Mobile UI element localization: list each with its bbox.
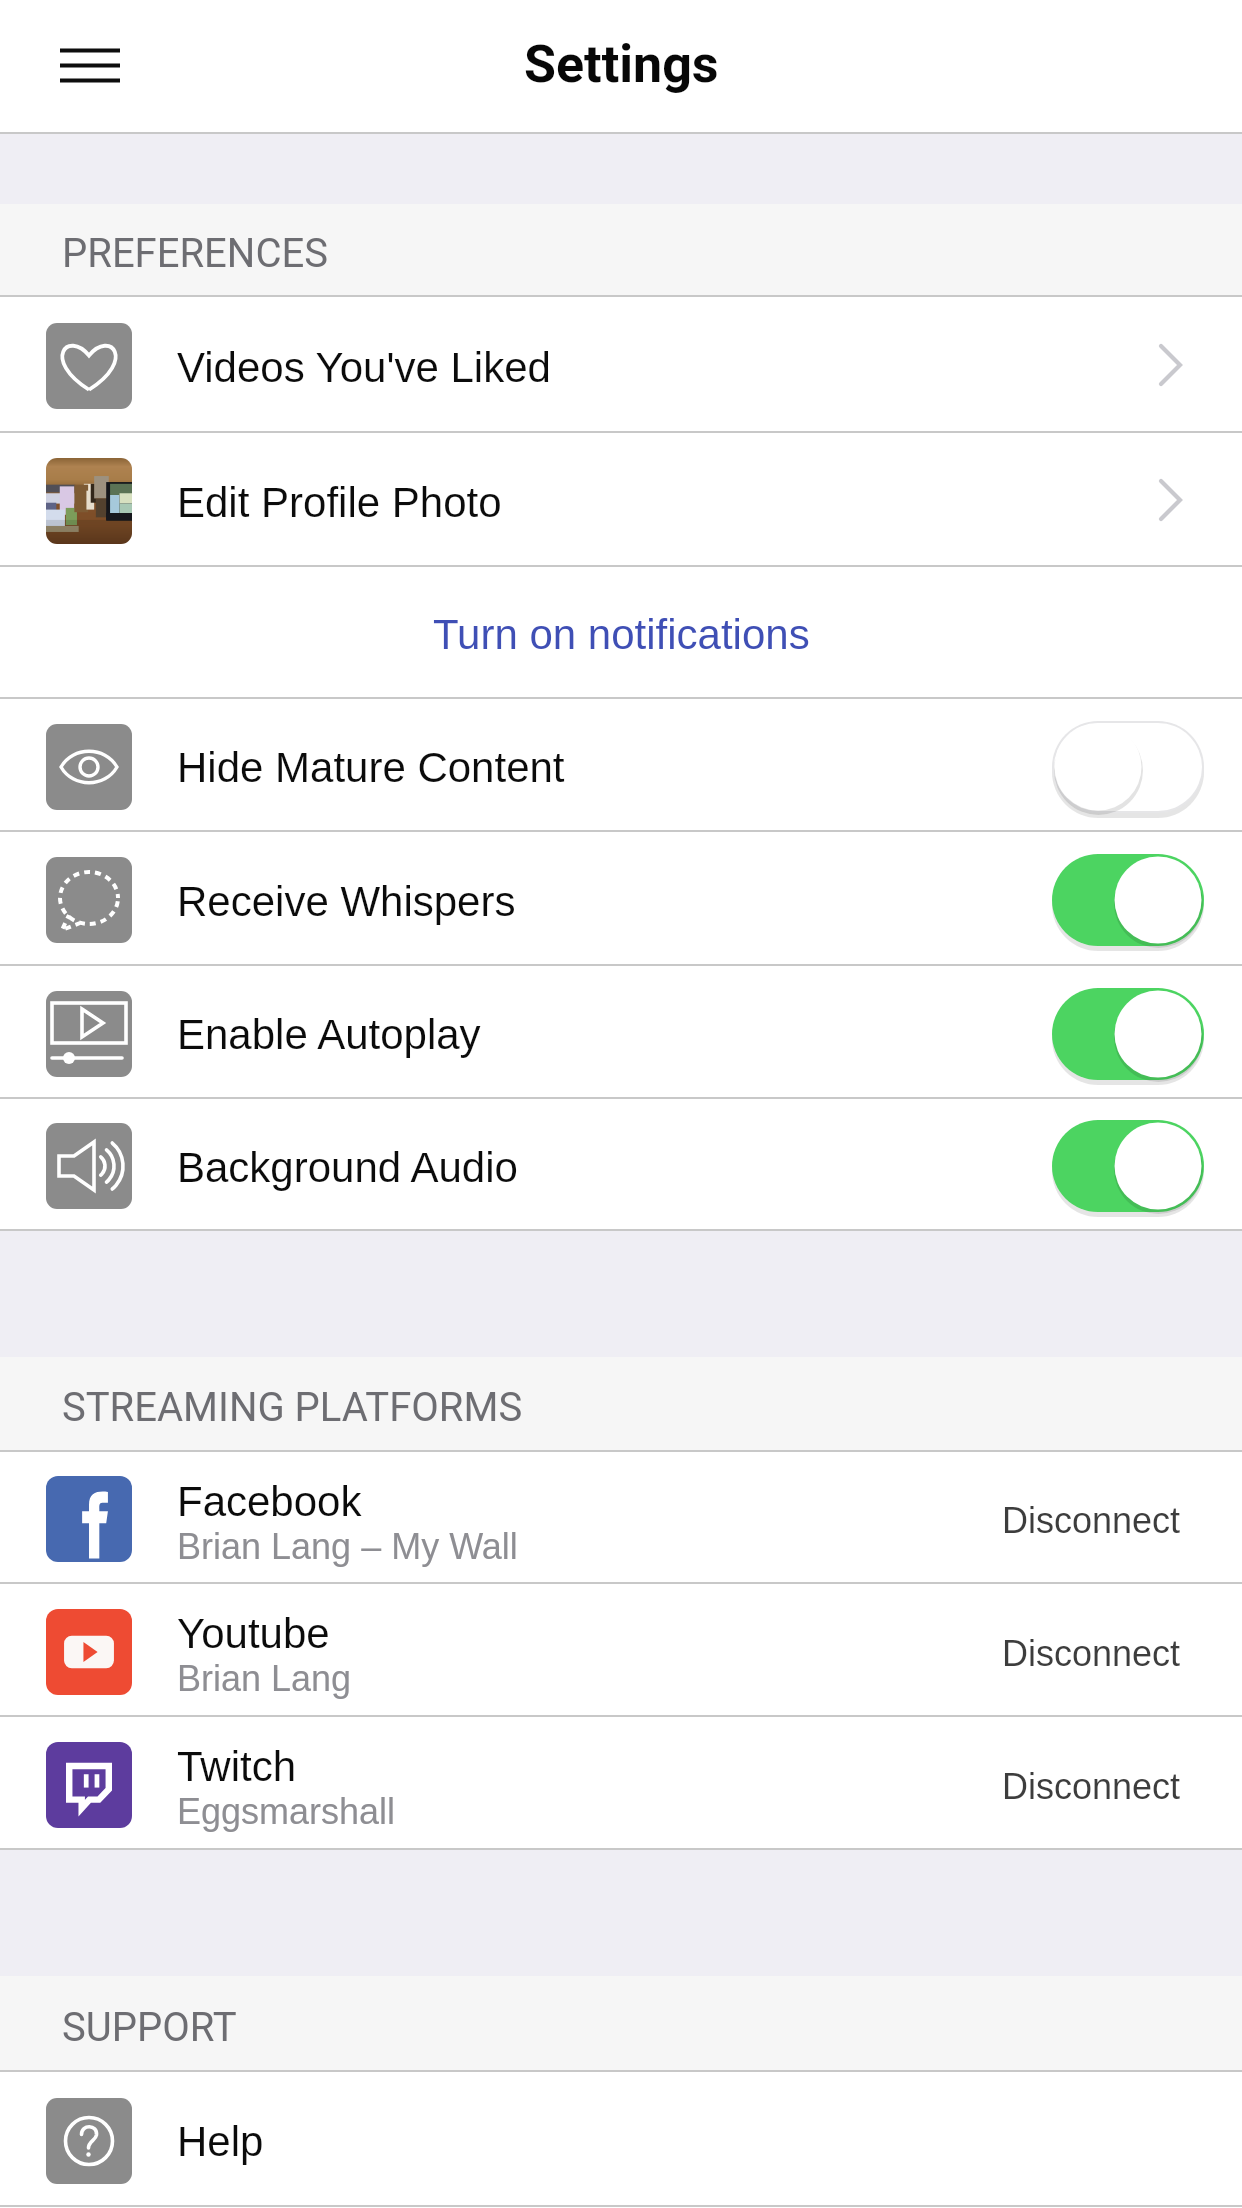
button[interactable]: Switch on — [1052, 1120, 1204, 1216]
other: Open — [1159, 479, 1183, 521]
button[interactable]: Disconnect — [998, 1758, 1185, 1814]
staticText: Receive Whispers — [177, 878, 516, 925]
button[interactable]: Switch on — [1052, 854, 1204, 950]
staticText: Turn on notifications — [433, 611, 810, 658]
staticText: Hide Mature Content — [177, 744, 565, 791]
button[interactable]: Turn on notifications — [0, 567, 1242, 697]
staticText: Facebook — [177, 1478, 362, 1525]
staticText: Edit Profile Photo — [177, 479, 502, 526]
other: Open — [1159, 344, 1183, 386]
button[interactable]: Facebook — [0, 1452, 1242, 1582]
staticText: Background Audio — [177, 1144, 518, 1191]
staticText: Disconnect — [1002, 1766, 1181, 1806]
staticText: Settings — [524, 34, 719, 95]
staticText: Help — [177, 2118, 264, 2165]
staticText: Eggsmarshall — [177, 1791, 396, 1831]
staticText: STREAMING PLATFORMS — [62, 1384, 523, 1431]
staticText: Videos You've Liked — [177, 344, 551, 391]
button[interactable]: Switch off — [1052, 721, 1204, 817]
staticText: SUPPORT — [62, 2004, 237, 2051]
button[interactable]: Help — [0, 2072, 1242, 2205]
button[interactable]: Hide Mature Content — [0, 699, 1242, 830]
button[interactable]: Receive Whispers — [0, 832, 1242, 964]
button[interactable]: Switch on — [1052, 988, 1204, 1084]
staticText: PREFERENCES — [62, 230, 328, 277]
staticText: Youtube — [177, 1610, 330, 1657]
staticText: Brian Lang – My Wall — [177, 1526, 518, 1566]
button[interactable]: Twitch — [0, 1717, 1242, 1848]
staticText: Disconnect — [1002, 1500, 1181, 1540]
staticText: Brian Lang — [177, 1658, 352, 1698]
button[interactable]: Enable Autoplay — [0, 966, 1242, 1097]
button[interactable]: Disconnect — [998, 1492, 1185, 1548]
button[interactable]: Menu — [40, 26, 140, 106]
button[interactable]: Youtube — [0, 1584, 1242, 1715]
button[interactable]: Edit Profile Photo — [0, 433, 1242, 565]
button[interactable]: Background Audio — [0, 1099, 1242, 1229]
staticText: Enable Autoplay — [177, 1011, 481, 1058]
button[interactable]: Disconnect — [998, 1625, 1185, 1681]
staticText: Disconnect — [1002, 1633, 1181, 1673]
staticText: Twitch — [177, 1743, 297, 1790]
button[interactable]: Videos You've Liked — [0, 297, 1242, 431]
